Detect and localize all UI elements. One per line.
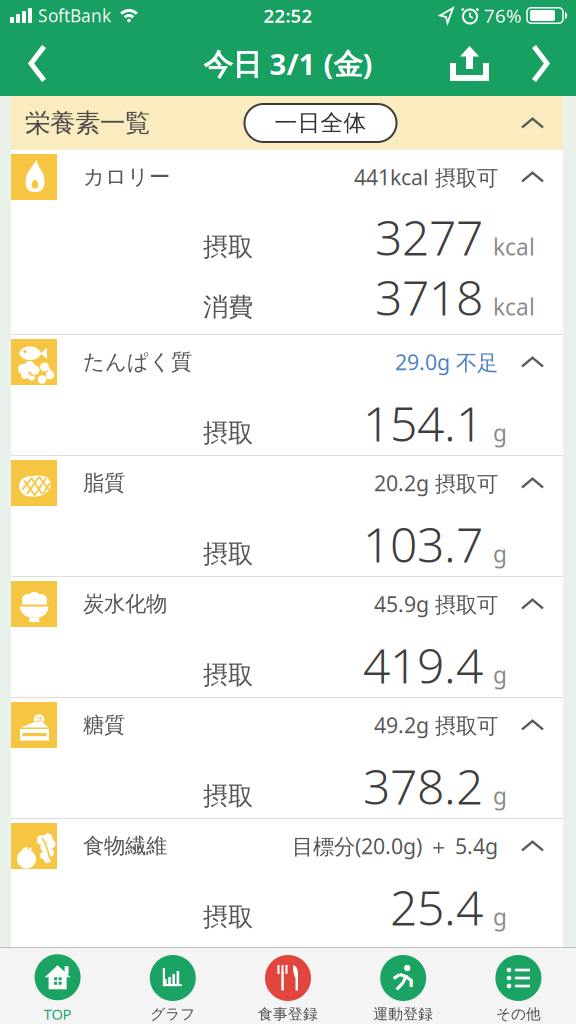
- staticText: 脂質: [83, 470, 125, 496]
- button[interactable]: 食事登録: [230, 955, 346, 1023]
- button[interactable]: 食物繊維を折りたたむ: [11, 819, 563, 873]
- staticText: 栄養素一覧: [25, 107, 150, 138]
- staticText: 摂取: [203, 232, 253, 263]
- staticText: g: [493, 418, 507, 448]
- staticText: 3718: [375, 265, 483, 329]
- button[interactable]: 共有: [450, 46, 530, 81]
- staticText: カロリー: [83, 164, 170, 190]
- staticText: g: [493, 902, 507, 932]
- staticText: 糖質: [83, 712, 125, 738]
- staticText: 45.9g 摂取可: [374, 590, 498, 618]
- staticText: 摂取: [203, 660, 253, 691]
- button[interactable]: 前の日: [0, 44, 60, 82]
- staticText: g: [493, 781, 507, 811]
- button[interactable]: 炭水化物を折りたたむ: [11, 577, 563, 631]
- staticText: 摂取: [203, 539, 253, 570]
- button[interactable]: 次の日: [530, 44, 576, 82]
- staticText: 3277: [375, 205, 483, 269]
- button[interactable]: グラフ: [115, 955, 230, 1023]
- staticText: たんぱく質: [83, 349, 192, 375]
- button[interactable]: TOP: [0, 954, 115, 1024]
- staticText: 摂取: [203, 418, 253, 449]
- staticText: 154.1: [363, 391, 483, 455]
- button[interactable]: たんぱく質を折りたたむ: [11, 335, 563, 389]
- staticText: g: [493, 660, 507, 690]
- staticText: グラフ: [150, 1005, 195, 1023]
- button[interactable]: 運動登録: [346, 955, 461, 1023]
- staticText: TOP: [44, 1004, 72, 1024]
- staticText: 49.2g 摂取可: [374, 711, 498, 739]
- staticText: 20.2g 摂取可: [374, 469, 498, 497]
- staticText: 76%: [484, 3, 522, 28]
- staticText: 目標分(20.0g) ＋ 5.4g: [292, 832, 498, 860]
- staticText: kcal: [493, 292, 535, 322]
- staticText: 炭水化物: [83, 591, 167, 617]
- staticText: 22:52: [263, 3, 312, 28]
- button[interactable]: 折りたたむ: [517, 117, 544, 128]
- staticText: 食事登録: [258, 1005, 318, 1023]
- staticText: 378.2: [363, 754, 483, 818]
- staticText: 419.4: [363, 633, 483, 697]
- staticText: 食物繊維: [83, 833, 167, 859]
- staticText: 今日 3/1 (金): [203, 44, 372, 83]
- staticText: 25.4: [390, 875, 483, 939]
- staticText: 一日全体: [274, 109, 366, 137]
- button[interactable]: カロリーを折りたたむ: [11, 150, 563, 204]
- staticText: 消費: [203, 292, 253, 323]
- staticText: 441kcal 摂取可: [354, 163, 498, 191]
- staticText: kcal: [493, 232, 535, 262]
- button[interactable]: その他: [461, 955, 576, 1023]
- button[interactable]: 一日全体: [244, 104, 396, 142]
- staticText: 103.7: [363, 512, 483, 576]
- staticText: 摂取: [203, 781, 253, 812]
- staticText: SoftBank: [38, 4, 111, 27]
- button[interactable]: 糖質を折りたたむ: [11, 698, 563, 752]
- staticText: g: [493, 539, 507, 569]
- button[interactable]: 脂質を折りたたむ: [11, 456, 563, 510]
- staticText: 29.0g 不足: [395, 348, 498, 376]
- staticText: その他: [496, 1005, 541, 1023]
- staticText: 摂取: [203, 902, 253, 933]
- staticText: 運動登録: [373, 1005, 433, 1023]
